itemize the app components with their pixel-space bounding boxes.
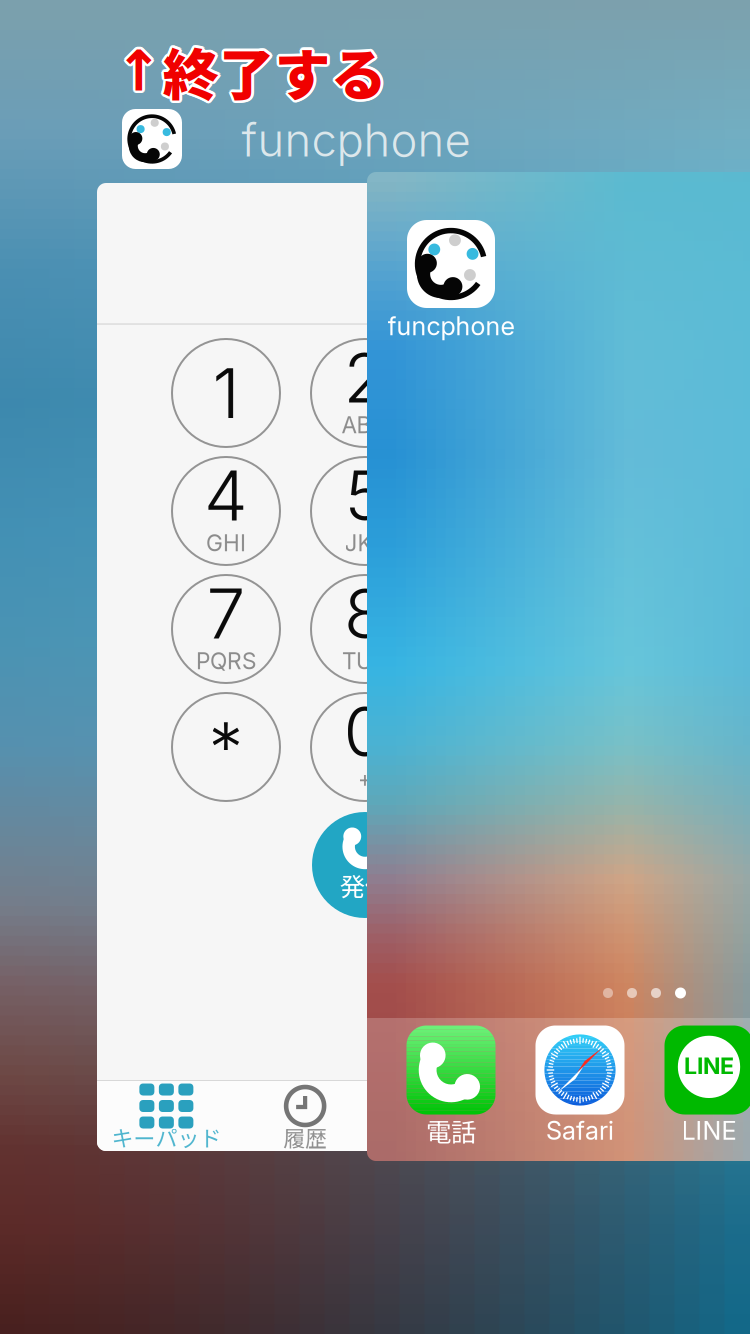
staticText: MNO bbox=[477, 529, 531, 557]
staticText: 7 bbox=[206, 571, 245, 655]
button[interactable]: 発信 bbox=[312, 812, 418, 918]
staticText: 終了する bbox=[162, 28, 386, 109]
staticText: DEF bbox=[482, 411, 525, 439]
staticText: WXYZ bbox=[471, 647, 537, 675]
button[interactable]: 9 bbox=[448, 573, 560, 685]
staticText: 終了する bbox=[165, 32, 389, 113]
staticText: 終了する bbox=[160, 29, 384, 110]
button[interactable]: LINE bbox=[640, 1024, 750, 1144]
staticText: ↑ bbox=[118, 40, 165, 105]
staticText: GHI bbox=[206, 529, 246, 557]
staticText: 終了する bbox=[160, 30, 384, 112]
staticText: キーパッド bbox=[111, 1121, 221, 1153]
staticText: 終了する bbox=[161, 28, 385, 109]
staticText: funcphone bbox=[241, 113, 470, 167]
staticText: TUV bbox=[342, 647, 388, 675]
button[interactable]: キーパッド bbox=[97, 1081, 236, 1151]
button[interactable]: 2 bbox=[309, 337, 421, 449]
staticText: ↑ bbox=[117, 41, 164, 106]
staticText: 発信 bbox=[340, 867, 390, 903]
staticText: PQRS bbox=[196, 647, 256, 675]
button[interactable]: 履歴 bbox=[236, 1081, 375, 1151]
staticText: ↑ bbox=[114, 36, 161, 101]
button[interactable]: 4 bbox=[170, 455, 282, 567]
button[interactable]: * bbox=[170, 691, 282, 803]
staticText: ABC bbox=[341, 411, 388, 439]
button[interactable]: 0 bbox=[309, 691, 421, 803]
staticText: 0 bbox=[343, 689, 386, 773]
staticText: ↑ bbox=[118, 38, 165, 104]
staticText: 終了する bbox=[162, 30, 386, 112]
button[interactable]: 6 bbox=[448, 455, 560, 567]
staticText: LINE bbox=[681, 1115, 736, 1146]
staticText: ↑ bbox=[113, 37, 160, 102]
staticText: 8 bbox=[344, 571, 386, 655]
staticText: ↑ bbox=[115, 38, 162, 104]
staticText: # bbox=[482, 705, 526, 789]
button[interactable]: # bbox=[448, 691, 560, 803]
staticText: 5 bbox=[344, 453, 385, 537]
staticText: ↑ bbox=[113, 40, 160, 105]
staticText: JKL bbox=[344, 529, 385, 557]
button[interactable]: 1 bbox=[170, 337, 282, 449]
staticText: ↑ bbox=[117, 36, 164, 101]
button[interactable]: 3 bbox=[448, 337, 560, 449]
staticText: ↑ bbox=[114, 41, 161, 106]
staticText: 終了する bbox=[165, 29, 389, 110]
button[interactable]: funcphone bbox=[386, 219, 516, 339]
staticText: 4 bbox=[204, 453, 248, 537]
staticText: ↑ bbox=[113, 38, 160, 104]
staticText: 終了する bbox=[160, 32, 384, 113]
staticText: LINE bbox=[684, 1052, 734, 1080]
staticText: 履歴 bbox=[283, 1121, 327, 1153]
button[interactable]: 7 bbox=[170, 573, 282, 685]
staticText: 終了する bbox=[164, 33, 388, 114]
button[interactable]: 8 bbox=[309, 573, 421, 685]
staticText: 2 bbox=[343, 335, 386, 419]
staticText: Safari bbox=[546, 1115, 614, 1146]
staticText: + bbox=[357, 765, 372, 793]
staticText: ↑ bbox=[115, 41, 162, 106]
button[interactable]: 電話 bbox=[382, 1024, 520, 1144]
button[interactable]: 設定 bbox=[513, 1081, 652, 1151]
button[interactable]: Safari bbox=[511, 1024, 649, 1144]
staticText: 終了する bbox=[164, 28, 388, 109]
staticText: 終了する bbox=[161, 33, 385, 114]
button[interactable]: 5 bbox=[309, 455, 421, 567]
staticText: * bbox=[208, 705, 243, 789]
staticText: 9 bbox=[483, 571, 525, 655]
staticText: 連絡先 bbox=[411, 1121, 477, 1153]
staticText: ↑ bbox=[115, 36, 162, 101]
staticText: 終了する bbox=[165, 30, 389, 112]
button[interactable]: 連絡先 bbox=[374, 1081, 513, 1151]
staticText: 3 bbox=[483, 335, 525, 419]
staticText: 6 bbox=[483, 453, 525, 537]
staticText: ↑ bbox=[118, 37, 165, 102]
staticText: 電話 bbox=[426, 1112, 476, 1149]
staticText: 設定 bbox=[561, 1121, 605, 1153]
staticText: 1 bbox=[212, 351, 239, 435]
staticText: 終了する bbox=[162, 33, 386, 114]
staticText: funcphone bbox=[387, 311, 514, 341]
